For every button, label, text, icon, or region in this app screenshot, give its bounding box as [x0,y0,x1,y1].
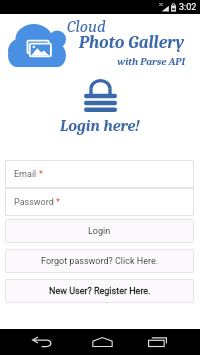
button[interactable]: Recent apps [135,329,179,355]
button[interactable]: New User? Register Here. [5,279,194,303]
staticText: Password [14,197,54,208]
staticText: * [56,197,60,208]
button[interactable]: Forgot password? Click Here. [5,249,194,273]
staticText: Forgot password? Click Here. [41,256,159,267]
button[interactable]: Home [80,329,124,355]
staticText: with Parse API [0,56,185,68]
staticText: Email [14,169,37,180]
button[interactable]: Login [5,219,194,243]
staticText: Cloud [67,17,106,37]
staticText: 3:02 [179,2,197,13]
staticText: Login here! [60,117,140,135]
button[interactable]: Back [20,329,64,355]
staticText: Photo Gallery [0,32,184,52]
button[interactable]: Email [5,160,194,188]
staticText: Login [88,226,111,237]
button[interactable]: Password [5,188,194,216]
staticText: * [39,169,43,180]
staticText: New User? Register Here. [49,286,151,297]
